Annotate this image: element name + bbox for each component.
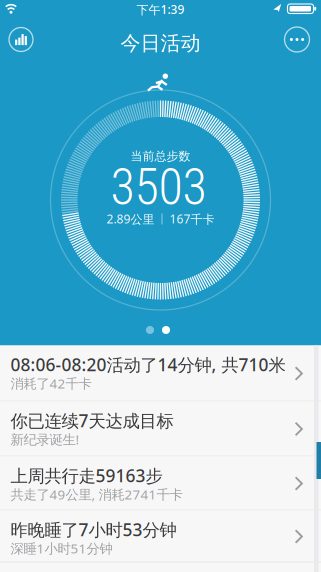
button[interactable]: 统计 — [9, 27, 33, 51]
staticText: 3503 — [110, 157, 206, 216]
staticText: 你已连续7天达成目标 — [10, 409, 173, 432]
staticText: 08:06-08:20活动了14分钟, 共710米 — [10, 353, 285, 376]
staticText: 深睡1小时51分钟 — [10, 539, 112, 557]
button[interactable]: 昨晚睡了7小时53分钟 — [0, 510, 321, 562]
staticText: 下午1:39 — [136, 1, 184, 17]
button[interactable]: 你已连续7天达成目标 — [0, 401, 321, 456]
staticText: 共走了49公里, 消耗2741千卡 — [10, 485, 182, 503]
button[interactable]: 上周共行走59163步 — [0, 456, 321, 510]
staticText: 昨晚睡了7小时53分钟 — [10, 518, 176, 541]
staticText: 消耗了42千卡 — [10, 374, 91, 392]
staticText: 167千卡 — [169, 211, 214, 227]
staticText: 当前总步数 — [130, 149, 190, 164]
staticText: 今日活动 — [120, 31, 200, 56]
button[interactable]: 更多 — [284, 27, 309, 52]
staticText: 新纪录诞生! — [10, 430, 79, 448]
button[interactable]: 08:06-08:20活动了14分钟, 共710米 — [0, 345, 321, 401]
staticText: 2.89公里 — [106, 211, 154, 227]
staticText: 上周共行走59163步 — [10, 464, 162, 487]
